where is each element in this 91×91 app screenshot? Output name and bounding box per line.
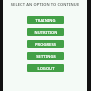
staticText: TRAINING — [35, 18, 56, 23]
button[interactable]: TRAINING — [27, 16, 64, 24]
staticText: PROGRESS — [35, 42, 56, 47]
button[interactable]: NUTRITION — [27, 28, 64, 36]
button[interactable]: SETTINGS — [27, 52, 64, 60]
staticText: SETTINGS — [36, 54, 56, 59]
button[interactable]: LOGOUT — [27, 64, 64, 72]
staticText: SELECT AN OPTION TO CONTINUE — [6, 2, 84, 7]
staticText: LOGOUT — [37, 66, 55, 71]
button[interactable]: PROGRESS — [27, 40, 64, 48]
staticText: NUTRITION — [34, 30, 58, 35]
